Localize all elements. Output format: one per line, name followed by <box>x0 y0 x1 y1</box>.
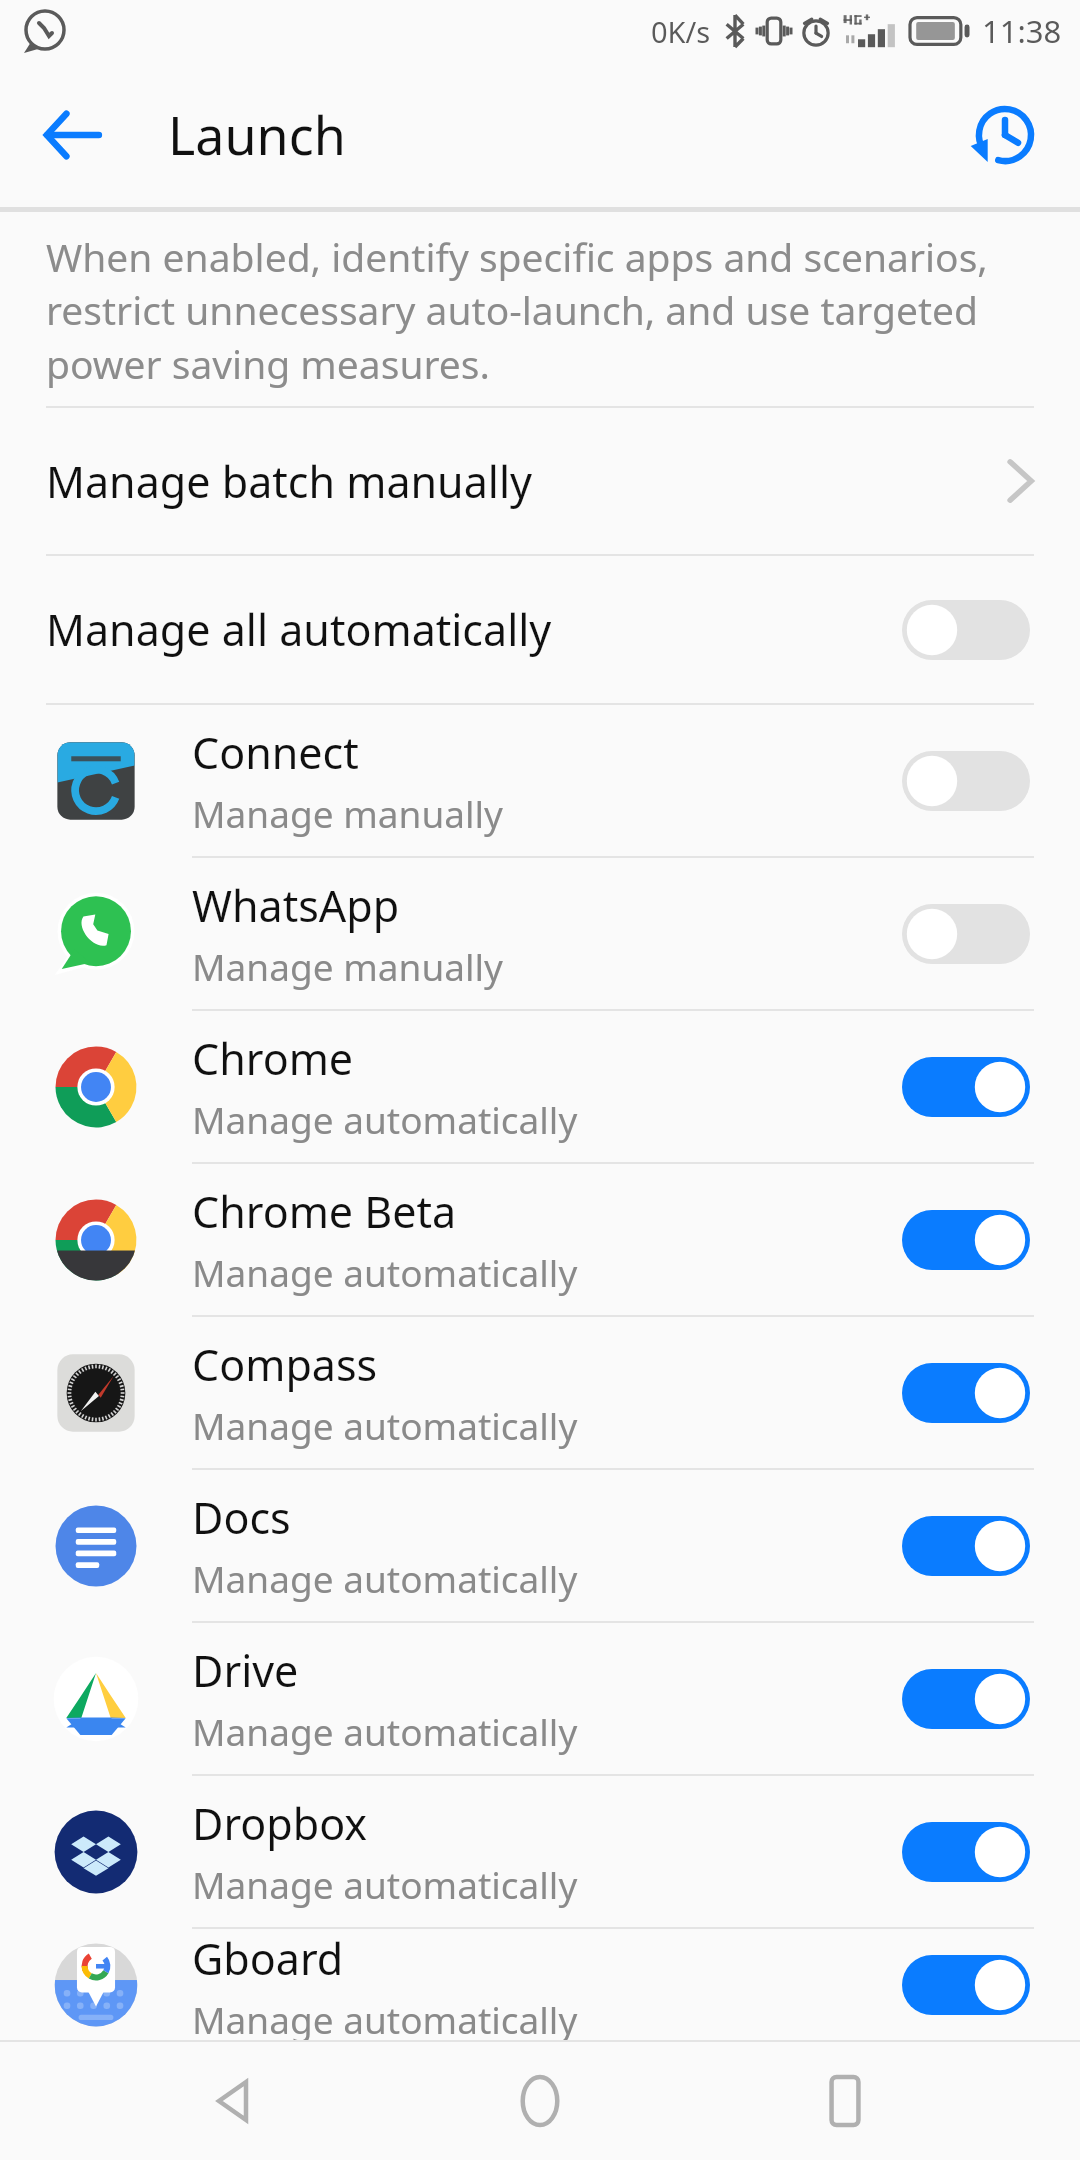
button[interactable]: Off <box>902 751 1030 811</box>
staticText: Drive <box>192 1641 299 1700</box>
button[interactable]: Off <box>902 904 1030 964</box>
button[interactable]: Compass <box>0 1317 1080 1468</box>
staticText: Connect <box>192 723 359 782</box>
staticText: 11:38 <box>982 10 1062 52</box>
button[interactable]: Chrome Beta <box>0 1164 1080 1315</box>
staticText: Manage automatically <box>192 1994 578 2040</box>
staticText: Chrome <box>192 1029 354 1088</box>
staticText: 0K/s <box>651 12 711 51</box>
button[interactable]: Manage all automatically <box>0 556 1080 703</box>
staticText: Manage automatically <box>192 1094 578 1144</box>
staticText: Manage automatically <box>192 1247 578 1297</box>
staticText: When enabled, identify specific apps and… <box>46 230 1034 391</box>
staticText: Gboard <box>192 1929 344 1988</box>
staticText: WhatsApp <box>192 876 400 935</box>
staticText: Compass <box>192 1335 378 1394</box>
button[interactable]: On <box>902 1955 1030 2015</box>
button[interactable]: Off <box>902 600 1030 660</box>
button[interactable]: Manage batch manually <box>0 408 1080 554</box>
staticText: Chrome Beta <box>192 1182 457 1241</box>
button[interactable]: History <box>960 90 1050 180</box>
staticText: Manage batch manually <box>46 452 1004 511</box>
button[interactable]: On <box>902 1363 1030 1423</box>
staticText: Manage automatically <box>192 1706 578 1756</box>
staticText: Manage automatically <box>192 1553 578 1603</box>
button[interactable]: Docs <box>0 1470 1080 1621</box>
button[interactable]: Connect <box>0 705 1080 856</box>
staticText: Manage automatically <box>192 1859 578 1909</box>
staticText: Docs <box>192 1488 291 1547</box>
staticText: Manage manually <box>192 941 503 991</box>
button[interactable]: Chrome <box>0 1011 1080 1162</box>
button[interactable]: Recent apps <box>775 2046 915 2156</box>
button[interactable]: On <box>902 1516 1030 1576</box>
staticText: Launch <box>168 99 346 170</box>
button[interactable]: On <box>902 1669 1030 1729</box>
staticText: Manage automatically <box>192 1400 578 1450</box>
button[interactable]: Drive <box>0 1623 1080 1774</box>
button[interactable]: Gboard <box>0 1929 1080 2040</box>
button[interactable]: Home <box>470 2046 610 2156</box>
staticText: Manage all automatically <box>46 600 902 659</box>
button[interactable]: On <box>902 1057 1030 1117</box>
button[interactable]: Back <box>165 2046 305 2156</box>
staticText: Dropbox <box>192 1794 368 1853</box>
button[interactable]: On <box>902 1210 1030 1270</box>
button[interactable]: On <box>902 1822 1030 1882</box>
button[interactable]: Dropbox <box>0 1776 1080 1927</box>
button[interactable]: WhatsApp <box>0 858 1080 1009</box>
button[interactable]: Back <box>30 93 114 177</box>
staticText: Manage manually <box>192 788 503 838</box>
